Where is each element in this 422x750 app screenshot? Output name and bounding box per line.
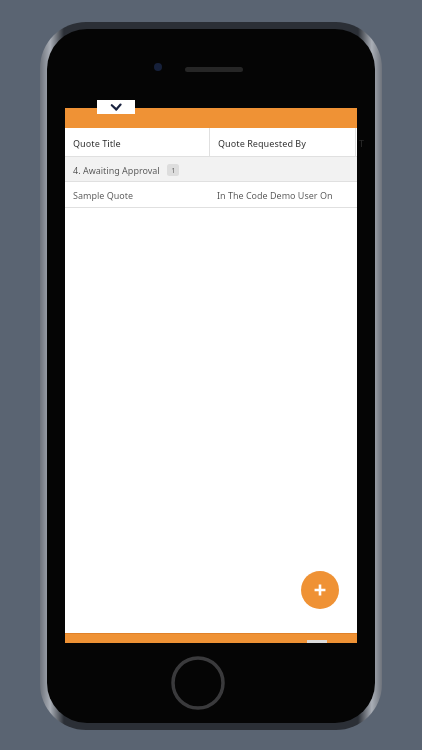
staticText: Quote Requested By xyxy=(218,137,306,149)
staticText: In The Code Demo User On 14/... xyxy=(217,189,355,201)
button[interactable]: 4. Awaiting Approval xyxy=(65,157,357,182)
button[interactable]: Quote Requested By xyxy=(210,128,355,157)
button[interactable]: Sample Quote xyxy=(65,182,357,208)
staticText: Sample Quote xyxy=(73,189,134,201)
button[interactable]: Add new quote xyxy=(301,571,339,609)
button[interactable]: Back xyxy=(97,100,135,114)
button[interactable]: T xyxy=(356,128,357,157)
button[interactable]: Quote Title xyxy=(65,128,209,157)
staticText: 4. Awaiting Approval xyxy=(73,164,160,176)
staticText: Quote Title xyxy=(73,137,121,149)
staticText: 1 xyxy=(171,165,176,175)
